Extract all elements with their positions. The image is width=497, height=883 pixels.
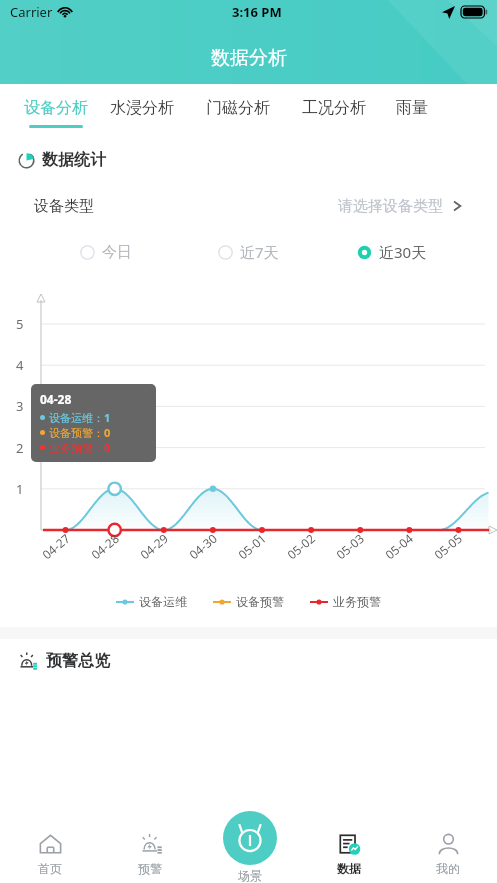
staticText: 05-01 bbox=[235, 530, 269, 562]
staticText: 05-02 bbox=[284, 530, 318, 562]
staticText: 门磁分析 bbox=[206, 98, 270, 118]
button[interactable]: 设备类型 bbox=[34, 182, 463, 230]
staticText: 04-29 bbox=[137, 530, 171, 562]
staticText: 05-05 bbox=[431, 530, 465, 562]
staticText: 0 bbox=[104, 425, 111, 440]
staticText: 04-28 bbox=[88, 530, 122, 562]
staticText: 设备预警 bbox=[236, 594, 284, 609]
staticText: 3:16 PM bbox=[232, 3, 282, 21]
staticText: 业务预警 bbox=[333, 594, 381, 609]
button[interactable]: 近7天 bbox=[177, 230, 320, 274]
button[interactable]: 场景 bbox=[223, 811, 277, 883]
staticText: 设备运维： bbox=[49, 411, 104, 425]
button[interactable]: 设备分析 bbox=[18, 84, 94, 140]
staticText: 雨量 bbox=[396, 98, 428, 118]
staticText: 设备类型 bbox=[34, 197, 94, 216]
button[interactable]: 雨量 bbox=[382, 84, 442, 140]
other: 场景 bbox=[223, 811, 277, 865]
button[interactable]: 今日 bbox=[34, 230, 177, 274]
staticText: 3 bbox=[16, 397, 24, 415]
staticText: 数据 bbox=[337, 861, 361, 876]
staticText: 近7天 bbox=[240, 242, 279, 262]
staticText: 04-28 bbox=[40, 391, 72, 407]
staticText: 设备分析 bbox=[24, 98, 88, 118]
staticText: 请选择设备类型 bbox=[338, 197, 443, 216]
staticText: 首页 bbox=[38, 861, 62, 876]
button[interactable]: 我的 bbox=[398, 811, 497, 883]
button[interactable]: 数据 bbox=[299, 811, 398, 883]
staticText: 场景 bbox=[238, 868, 262, 883]
staticText: Carrier bbox=[10, 3, 53, 21]
staticText: 0 bbox=[104, 440, 111, 455]
staticText: 近30天 bbox=[379, 242, 427, 262]
staticText: 04-27 bbox=[39, 530, 73, 562]
button[interactable]: 预警 bbox=[100, 811, 200, 883]
staticText: 今日 bbox=[102, 243, 132, 262]
staticText: 业务预警： bbox=[49, 441, 104, 455]
staticText: 05-03 bbox=[333, 530, 367, 562]
staticText: 1 bbox=[16, 480, 24, 498]
staticText: 1 bbox=[104, 410, 111, 425]
button[interactable]: 首页 bbox=[0, 811, 100, 883]
button[interactable]: 工况分析 bbox=[286, 84, 382, 140]
staticText: 预警总览 bbox=[46, 651, 110, 671]
button[interactable]: 近30天 bbox=[320, 230, 463, 274]
staticText: 我的 bbox=[436, 861, 460, 876]
staticText: 数据分析 bbox=[211, 46, 287, 70]
staticText: 设备预警： bbox=[49, 426, 104, 440]
staticText: 5 bbox=[16, 315, 24, 333]
staticText: 工况分析 bbox=[302, 98, 366, 118]
staticText: 2 bbox=[16, 439, 24, 457]
staticText: 4 bbox=[16, 356, 24, 374]
staticText: 数据统计 bbox=[42, 150, 106, 170]
button[interactable]: 门磁分析 bbox=[190, 84, 286, 140]
staticText: 04-30 bbox=[186, 530, 220, 562]
staticText: 水浸分析 bbox=[110, 98, 174, 118]
staticText: 预警 bbox=[138, 861, 162, 876]
button[interactable]: 水浸分析 bbox=[94, 84, 190, 140]
staticText: 设备运维 bbox=[139, 594, 187, 609]
staticText: 05-04 bbox=[382, 530, 416, 562]
